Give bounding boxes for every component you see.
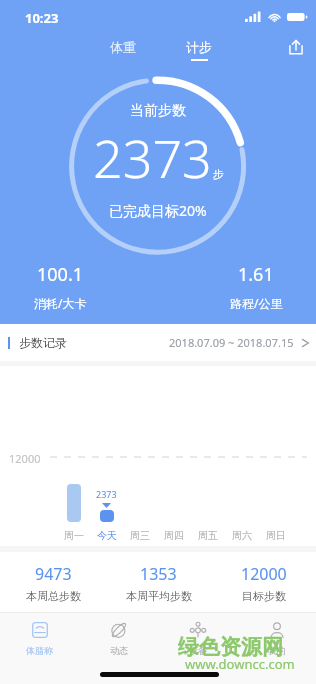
staticText: 路程/公里 [230,295,283,311]
staticText: 周五 [198,529,218,542]
staticText: 周六 [232,529,252,542]
staticText: 2373 [96,488,117,500]
staticText: 12000 [9,451,41,466]
staticText: 体重 [110,39,136,55]
button[interactable]: 我的 [237,613,316,661]
staticText: 周日 [266,529,286,542]
button[interactable]: 设备 [158,613,237,661]
staticText: 周四 [164,529,184,542]
staticText: 本周总步数 [26,589,81,603]
button[interactable]: 12000 [211,552,316,612]
staticText: 100.1 [37,262,84,287]
staticText: 周三 [130,529,150,542]
staticText: 动态 [110,645,128,656]
staticText: 本周平均步数 [126,589,192,603]
staticText: 10:23 [25,9,59,27]
staticText: 步 [213,167,224,181]
staticText: www.downcc.com [185,655,295,673]
button[interactable]: 动态 [79,613,158,661]
button[interactable]: 计步 [174,34,224,66]
button[interactable]: 步数记录 [0,324,316,361]
staticText: 1353 [140,563,177,585]
staticText: 9473 [35,563,72,585]
button[interactable]: 1353 [106,552,211,612]
button[interactable]: 体脂称 [0,613,79,661]
staticText: 绿色资源网 [178,634,283,660]
button[interactable]: 9473 [0,552,106,612]
button[interactable]: Share [283,34,309,60]
button[interactable]: 体重 [98,34,148,60]
staticText: 今天 [97,529,117,542]
staticText: 计步 [186,39,212,55]
staticText: 消耗/大卡 [34,295,87,311]
staticText: 周一 [64,529,84,542]
staticText: 体脂称 [26,645,53,656]
staticText: 已完成目标20% [109,201,207,220]
staticText: 12000 [241,563,287,585]
staticText: 2018.07.09 ~ 2018.07.15 [169,335,294,350]
staticText: 1.61 [238,262,274,287]
staticText: 2373 [93,122,212,193]
staticText: 目标步数 [242,589,286,603]
staticText: 设备 [189,645,207,656]
staticText: 我的 [268,645,286,656]
staticText: 步数记录 [19,335,67,350]
staticText: 当前步数 [130,102,186,120]
